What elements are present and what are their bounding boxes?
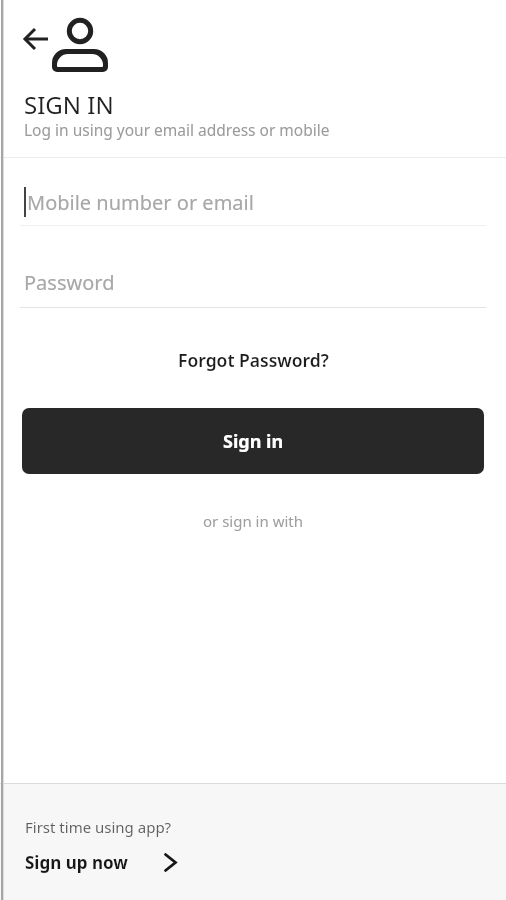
button[interactable]: Mobile number or email [20, 180, 486, 226]
staticText: Sign in [223, 429, 284, 454]
staticText: or sign in with [203, 511, 304, 531]
staticText: Log in using your email address or mobil… [24, 119, 330, 140]
staticText: Sign up now [25, 851, 128, 874]
staticText: SIGN IN [24, 88, 114, 121]
staticText: First time using app? [25, 817, 172, 837]
button[interactable]: Password [20, 262, 486, 308]
button[interactable]: Sign up now [25, 851, 177, 874]
button[interactable] [14, 24, 58, 54]
staticText: Mobile number or email [27, 189, 254, 216]
staticText: Password [24, 269, 115, 296]
button[interactable]: Sign in [22, 408, 484, 474]
button[interactable]: Forgot Password? [174, 344, 333, 376]
